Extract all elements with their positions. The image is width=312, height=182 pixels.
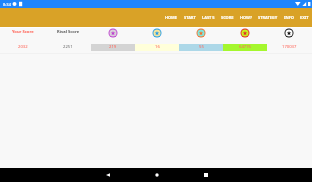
button[interactable]: Rank red: [240, 28, 250, 38]
staticText: Your Score: [12, 29, 34, 35]
staticText: 219: [109, 44, 117, 50]
button[interactable]: LAST 5: [199, 12, 218, 23]
staticText: STRATEGY: [258, 15, 278, 20]
staticText: 16: [155, 44, 160, 50]
staticText: 170037: [282, 44, 297, 50]
staticText: 2032: [18, 44, 28, 50]
staticText: SCORE: [221, 15, 234, 20]
button[interactable]: EXIT: [297, 12, 312, 23]
button[interactable]: Rank black: [284, 28, 294, 38]
staticText: EXIT: [300, 15, 309, 20]
staticText: 2251: [63, 44, 73, 50]
staticText: 64776: [239, 44, 251, 50]
button[interactable]: Back: [94, 168, 121, 182]
staticText: 8:34: [3, 2, 11, 7]
button[interactable]: INFO: [281, 12, 297, 23]
staticText: START: [184, 15, 196, 20]
button[interactable]: HOW?: [237, 12, 255, 23]
button[interactable]: Rank orange: [196, 28, 206, 38]
button[interactable]: START: [181, 12, 199, 23]
button[interactable]: HOME: [162, 12, 181, 23]
staticText: 55: [199, 44, 204, 50]
staticText: HOME: [165, 15, 178, 20]
staticText: INFO: [284, 15, 294, 20]
button[interactable]: STRATEGY: [255, 12, 281, 23]
button[interactable]: Home: [143, 168, 170, 182]
staticText: Rival Score: [57, 29, 80, 35]
staticText: LAST 5: [202, 15, 215, 20]
button[interactable]: SCORE: [218, 12, 237, 23]
button[interactable]: Rank purple: [108, 28, 118, 38]
staticText: HOW?: [240, 15, 252, 20]
button[interactable]: Recents: [192, 168, 219, 182]
button[interactable]: Rank blue: [152, 28, 162, 38]
